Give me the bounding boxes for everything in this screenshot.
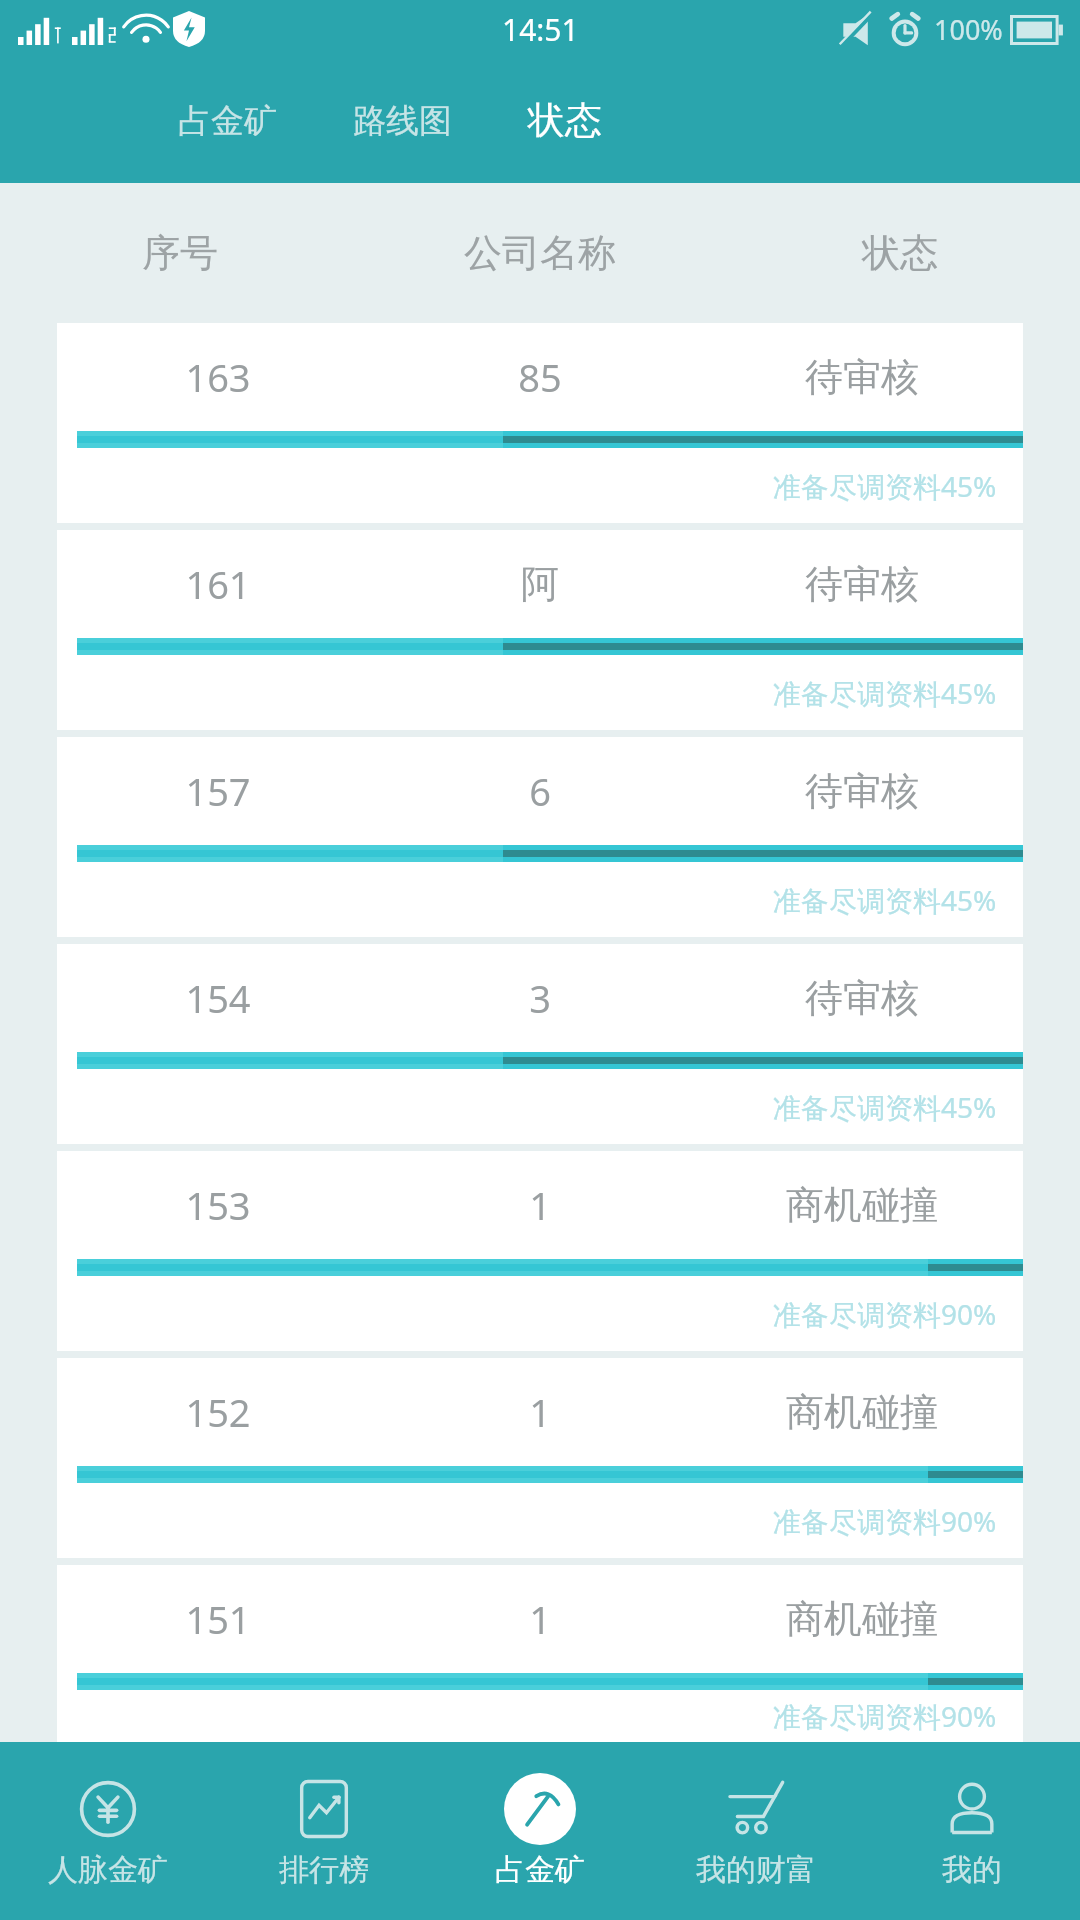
- button[interactable]: 151: [57, 1565, 1023, 1742]
- staticText: 准备尽调资料45%: [773, 881, 997, 919]
- button[interactable]: 153: [57, 1151, 1023, 1351]
- staticText: 准备尽调资料90%: [773, 1697, 997, 1735]
- staticText: 占金矿: [178, 100, 277, 142]
- staticText: 我的财富: [696, 1851, 816, 1889]
- staticText: 人脉金矿: [48, 1851, 168, 1889]
- staticText: 商机碰撞: [786, 1388, 938, 1436]
- staticText: 163: [185, 351, 251, 403]
- button[interactable]: 157: [57, 737, 1023, 937]
- button[interactable]: 152: [57, 1358, 1023, 1558]
- button[interactable]: 163: [57, 323, 1023, 523]
- button[interactable]: 我的财富: [648, 1742, 864, 1920]
- staticText: 准备尽调资料45%: [773, 674, 997, 712]
- staticText: 准备尽调资料90%: [773, 1502, 997, 1540]
- staticText: 待审核: [805, 353, 919, 401]
- button[interactable]: 154: [57, 944, 1023, 1144]
- staticText: 3: [529, 972, 551, 1024]
- button[interactable]: 状态: [520, 89, 610, 152]
- staticText: 商机碰撞: [786, 1595, 938, 1643]
- staticText: 157: [185, 765, 251, 817]
- staticText: 序号: [142, 229, 218, 277]
- staticText: 公司名称: [464, 229, 616, 277]
- staticText: 路线图: [353, 100, 452, 142]
- staticText: 161: [185, 558, 251, 610]
- staticText: 154: [185, 972, 251, 1024]
- staticText: 状态: [528, 97, 602, 144]
- staticText: 1: [529, 1386, 551, 1438]
- staticText: 我的: [942, 1851, 1002, 1889]
- staticText: 14:51: [502, 9, 579, 50]
- staticText: 阿: [521, 560, 559, 608]
- staticText: 占金矿: [495, 1851, 585, 1889]
- button[interactable]: 占金矿: [170, 92, 285, 150]
- button[interactable]: 路线图: [345, 92, 460, 150]
- button[interactable]: 人脉金矿: [0, 1742, 216, 1920]
- staticText: 准备尽调资料45%: [773, 1088, 997, 1126]
- staticText: 1: [529, 1593, 551, 1645]
- staticText: 6: [529, 765, 551, 817]
- staticText: 状态: [862, 229, 938, 277]
- staticText: 152: [185, 1386, 251, 1438]
- staticText: 待审核: [805, 560, 919, 608]
- staticText: 准备尽调资料45%: [773, 467, 997, 505]
- staticText: 待审核: [805, 974, 919, 1022]
- staticText: 排行榜: [279, 1851, 369, 1889]
- staticText: 100%: [934, 11, 1003, 48]
- button[interactable]: 我的: [864, 1742, 1080, 1920]
- staticText: 准备尽调资料90%: [773, 1295, 997, 1333]
- staticText: 153: [185, 1179, 251, 1231]
- staticText: 商机碰撞: [786, 1181, 938, 1229]
- button[interactable]: 排行榜: [216, 1742, 432, 1920]
- button[interactable]: 占金矿: [432, 1742, 648, 1920]
- staticText: 1: [529, 1179, 551, 1231]
- button[interactable]: 161: [57, 530, 1023, 730]
- staticText: 待审核: [805, 767, 919, 815]
- staticText: 85: [518, 351, 562, 403]
- staticText: 151: [185, 1593, 251, 1645]
